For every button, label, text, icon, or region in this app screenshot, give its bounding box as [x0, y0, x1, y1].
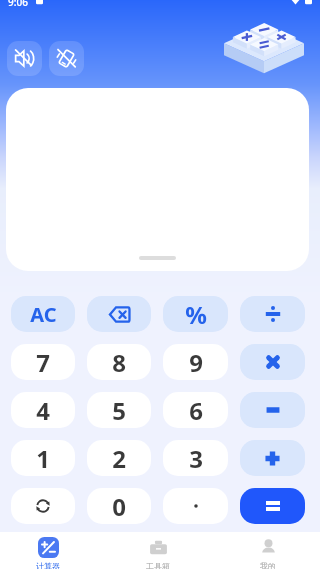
staticText: 5: [112, 394, 126, 427]
staticText: 工具箱: [146, 561, 170, 569]
button[interactable]: History: [11, 488, 75, 524]
button[interactable]: 8: [87, 344, 151, 380]
button[interactable]: [240, 344, 305, 380]
button[interactable]: Vibrate off: [49, 41, 84, 76]
button[interactable]: 5: [87, 392, 151, 428]
staticText: 3: [189, 442, 203, 475]
button[interactable]: 我的: [230, 532, 306, 569]
button[interactable]: [240, 296, 305, 332]
staticText: 9:06: [8, 0, 28, 7]
staticText: 我的: [260, 561, 276, 569]
staticText: %: [185, 298, 207, 331]
staticText: 7: [36, 346, 50, 379]
staticText: 9: [189, 346, 203, 379]
button[interactable]: Delete: [87, 296, 151, 332]
staticText: 计算器: [36, 561, 60, 569]
button[interactable]: AC: [11, 296, 75, 332]
button[interactable]: 3: [163, 440, 228, 476]
button[interactable]: Equals: [240, 488, 305, 524]
button[interactable]: %: [163, 296, 228, 332]
button[interactable]: [163, 488, 228, 524]
staticText: 0: [112, 490, 126, 523]
button[interactable]: [240, 392, 305, 428]
button[interactable]: 2: [87, 440, 151, 476]
button[interactable]: [240, 440, 305, 476]
button[interactable]: 9: [163, 344, 228, 380]
button[interactable]: 计算器: [10, 532, 86, 569]
button[interactable]: 7: [11, 344, 75, 380]
button[interactable]: 6: [163, 392, 228, 428]
staticText: 4: [36, 394, 50, 427]
button[interactable]: 4: [11, 392, 75, 428]
button[interactable]: 0: [87, 488, 151, 524]
button[interactable]: 工具箱: [120, 532, 196, 569]
button[interactable]: Mute: [7, 41, 42, 76]
staticText: 2: [112, 442, 126, 475]
staticText: 6: [189, 394, 203, 427]
staticText: AC: [30, 301, 57, 328]
staticText: 8: [112, 346, 126, 379]
staticText: 1: [36, 442, 50, 475]
button[interactable]: 1: [11, 440, 75, 476]
